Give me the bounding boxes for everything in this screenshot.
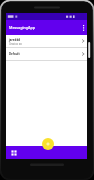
button[interactable] bbox=[42, 138, 54, 150]
button[interactable]: Default bbox=[6, 48, 87, 60]
staticText: Gracias por su preferencia bbox=[9, 42, 22, 45]
button[interactable]: jareddd bbox=[6, 35, 87, 47]
button[interactable] bbox=[82, 24, 85, 31]
button[interactable] bbox=[11, 150, 17, 156]
staticText: Default bbox=[9, 52, 81, 56]
staticText: MessagingApp bbox=[9, 25, 36, 30]
staticText: jareddd bbox=[9, 38, 21, 42]
